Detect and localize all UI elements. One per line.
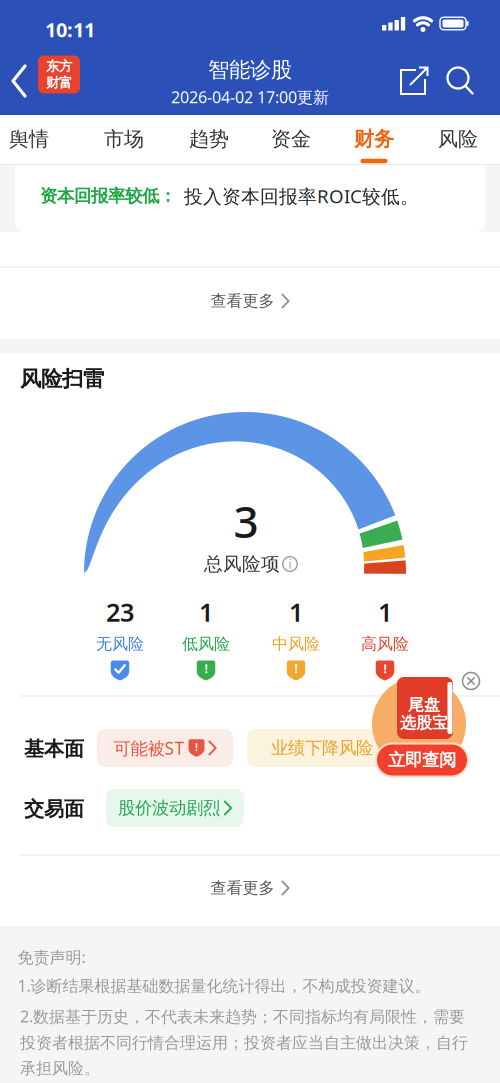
staticText: 基本面 <box>24 737 84 761</box>
button[interactable]: 趋势 <box>174 115 244 163</box>
staticText: 1 <box>199 595 213 629</box>
button[interactable]: 风险 <box>423 115 493 163</box>
button[interactable]: 查看更多 <box>210 868 289 908</box>
button[interactable]: 总风险项说明 <box>279 553 301 575</box>
staticText: 智能诊股 <box>208 57 292 83</box>
staticText: 财富 <box>46 74 72 91</box>
staticText: 2.数据基于历史，不代表未来趋势；不同指标均有局限性，需要投资者根据不同行情合理… <box>20 1006 468 1078</box>
staticText: 23 <box>106 595 134 629</box>
button[interactable]: 东方财富 <box>38 55 80 93</box>
staticText: 免责声明: <box>17 946 85 968</box>
staticText: 趋势 <box>189 127 229 151</box>
staticText: 2026-04-02 17:00更新 <box>171 86 329 108</box>
staticText: 风险扫雷 <box>20 366 104 392</box>
staticText: 东方 <box>46 58 72 74</box>
button[interactable]: 可能被ST <box>97 729 233 767</box>
staticText: 选股宝 <box>400 713 448 733</box>
staticText: 无风险 <box>96 634 144 654</box>
staticText: 业绩下降风险 <box>271 737 373 759</box>
staticText: ! <box>294 660 297 676</box>
staticText: 3 <box>233 492 258 550</box>
staticText: 10:11 <box>45 16 95 43</box>
button[interactable]: 尾盘选股宝 立即查阅 <box>370 672 474 782</box>
staticText: 股价波动剧烈 <box>118 797 220 819</box>
button[interactable]: 查看更多 <box>210 281 289 321</box>
staticText: 资本回报率较低： <box>40 185 176 207</box>
button[interactable]: 分享 <box>391 59 435 103</box>
button[interactable]: 舆情 <box>0 115 64 163</box>
button[interactable]: 股价波动剧烈 <box>106 789 244 827</box>
staticText: 市场 <box>104 127 144 151</box>
staticText: 可能被ST <box>113 736 184 759</box>
staticText: 风险 <box>438 127 478 151</box>
button[interactable]: 资金 <box>256 115 326 163</box>
button[interactable]: 关闭广告 <box>459 669 483 693</box>
staticText: 1.诊断结果根据基础数据量化统计得出，不构成投资建议。 <box>17 975 430 996</box>
staticText: 中风险 <box>272 634 320 654</box>
staticText: ! <box>383 660 386 676</box>
staticText: ! <box>195 740 198 754</box>
staticText: 投入资本回报率ROIC较低。 <box>184 184 419 208</box>
staticText: 高风险 <box>361 634 409 654</box>
staticText: 1 <box>378 595 392 629</box>
staticText: 查看更多 <box>210 878 274 898</box>
staticText: 低风险 <box>182 634 230 654</box>
button[interactable]: 业绩下降风险 <box>247 729 397 767</box>
staticText: 尾盘 <box>408 695 440 715</box>
staticText: 总风险项 <box>204 552 280 575</box>
staticText: 查看更多 <box>210 291 274 311</box>
button[interactable]: 返回 <box>4 59 34 103</box>
staticText: 财务 <box>354 127 394 151</box>
button[interactable]: 财务 <box>339 115 409 163</box>
button[interactable]: 市场 <box>89 115 159 163</box>
staticText: 舆情 <box>9 127 49 151</box>
staticText: i <box>288 556 291 572</box>
staticText: 资金 <box>271 127 311 151</box>
button[interactable]: 搜索 <box>439 59 483 103</box>
staticText: 立即查阅 <box>388 749 456 771</box>
staticText: 1 <box>289 595 303 629</box>
staticText: 交易面 <box>24 797 84 821</box>
staticText: ! <box>204 660 207 676</box>
